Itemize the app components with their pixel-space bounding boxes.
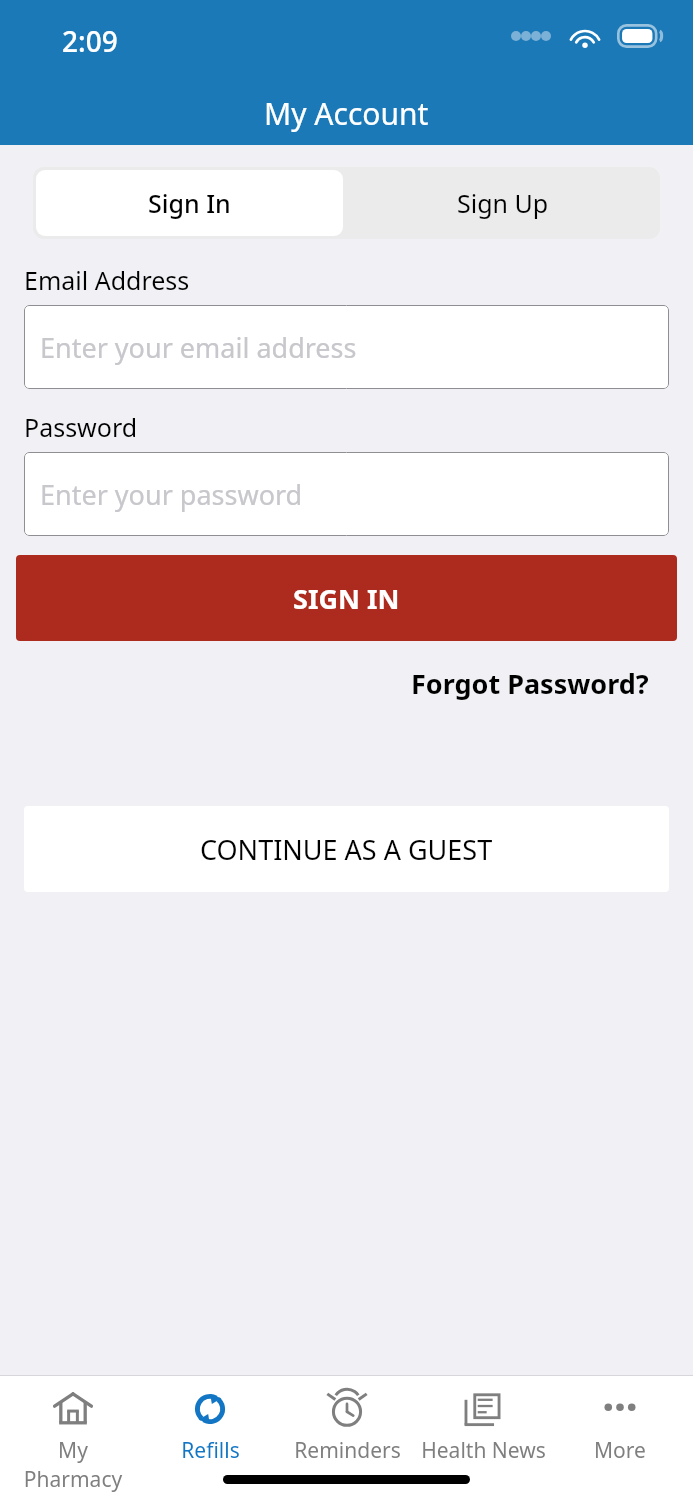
button[interactable]: Reminders bbox=[283, 1386, 411, 1465]
staticText: Refills bbox=[181, 1436, 240, 1465]
button[interactable]: More bbox=[556, 1386, 684, 1465]
button[interactable]: Refills bbox=[146, 1386, 274, 1465]
staticText: Password bbox=[24, 410, 138, 444]
staticText: 2:09 bbox=[62, 22, 118, 60]
button[interactable]: Health News bbox=[419, 1386, 547, 1465]
button[interactable]: Forgot Password? bbox=[411, 661, 693, 706]
staticText: More bbox=[594, 1436, 646, 1465]
staticText: Enter your password bbox=[40, 476, 303, 513]
staticText: Reminders bbox=[294, 1436, 401, 1465]
staticText: Forgot Password? bbox=[411, 665, 649, 702]
button[interactable]: CONTINUE AS A GUEST bbox=[24, 806, 669, 892]
staticText: Email Address bbox=[24, 263, 190, 297]
button[interactable]: Enter your email address bbox=[24, 305, 669, 389]
staticText: Sign In bbox=[148, 186, 231, 220]
staticText: Enter your email address bbox=[40, 329, 357, 366]
staticText: CONTINUE AS A GUEST bbox=[200, 831, 493, 868]
button[interactable]: Enter your password bbox=[24, 452, 669, 536]
staticText: My Pharmacy bbox=[9, 1436, 137, 1494]
button[interactable]: Sign In bbox=[36, 170, 343, 236]
button[interactable]: SIGN IN bbox=[16, 555, 677, 641]
staticText: My Account bbox=[264, 93, 429, 134]
button[interactable]: My Pharmacy bbox=[9, 1386, 137, 1494]
staticText: Health News bbox=[421, 1436, 546, 1465]
button[interactable]: Sign Up bbox=[346, 167, 660, 239]
staticText: SIGN IN bbox=[293, 580, 400, 617]
staticText: Sign Up bbox=[457, 186, 549, 220]
